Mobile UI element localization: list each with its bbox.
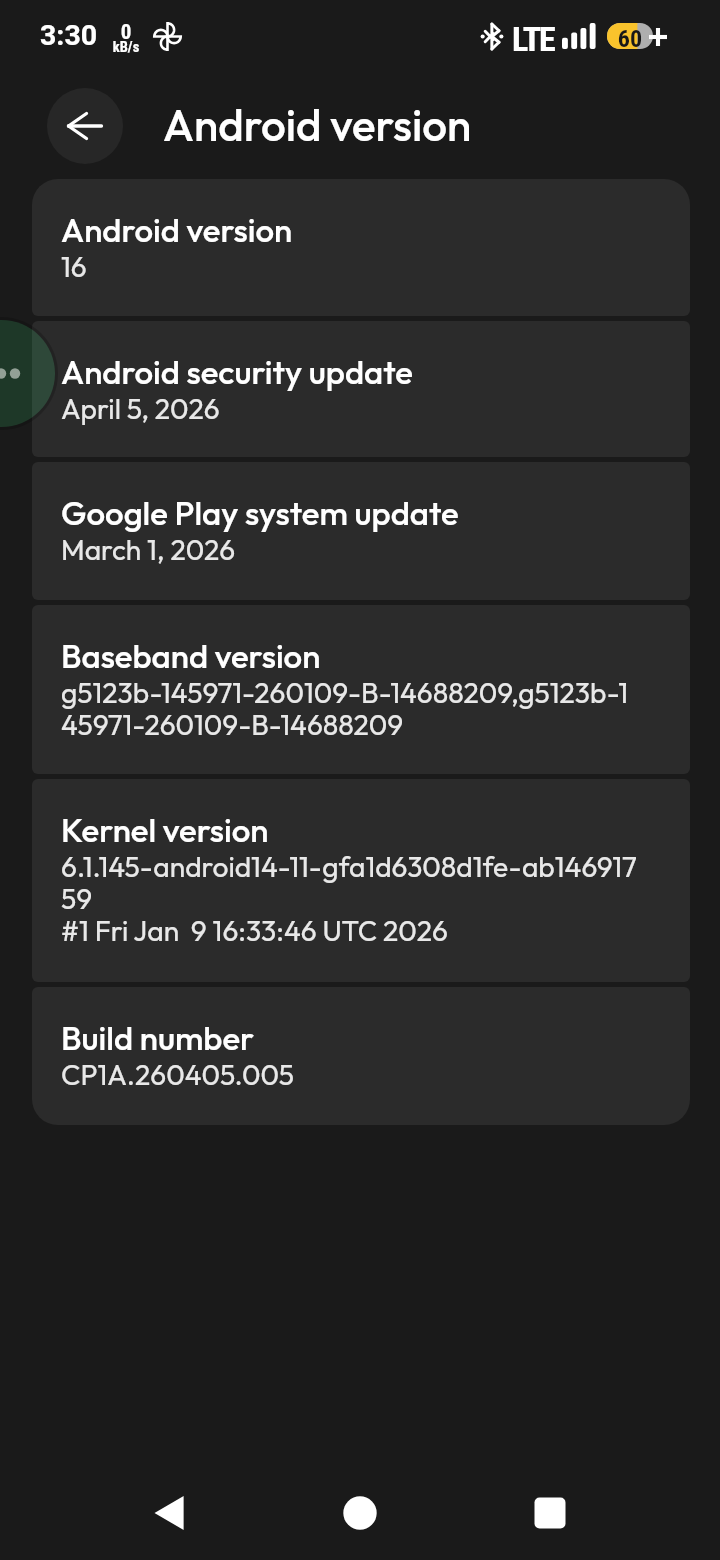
staticText: 16 [61,249,87,285]
button[interactable]: Recent apps [490,1453,610,1560]
button[interactable]: Back [110,1453,230,1560]
button[interactable]: Baseband version [32,605,690,774]
staticText: Google Play system update [61,492,459,534]
button[interactable]: Kernel version [32,779,690,982]
staticText: Build number [61,1017,255,1059]
staticText: Android version [61,209,293,251]
staticText: kB/s [104,39,148,56]
staticText: Android version [163,97,472,152]
staticText: Baseband version [61,635,321,677]
button[interactable]: Android version [32,179,690,316]
staticText: April 5, 2026 [61,391,220,427]
button[interactable]: Chat bubble [0,320,55,427]
staticText: g5123b-145971-260109-B-14688209,g5123b-1… [61,675,629,743]
button[interactable]: Navigate up [47,88,123,164]
staticText: CP1A.260405.005 [61,1057,295,1093]
button[interactable]: Google Play system update [32,462,690,600]
staticText: LTE [512,19,554,59]
staticText: 0 [104,20,148,45]
button[interactable]: Android security update [32,321,690,457]
staticText: 3:30 [40,19,98,52]
button[interactable]: Build number [32,987,690,1125]
staticText: March 1, 2026 [61,532,236,568]
staticText: 6.1.145-android14-11-gfa1d6308d1fe-ab146… [61,849,637,949]
staticText: Kernel version [61,809,269,851]
staticText: 60 [607,25,653,51]
staticText: Android security update [61,351,413,393]
button[interactable]: Home [300,1453,420,1560]
